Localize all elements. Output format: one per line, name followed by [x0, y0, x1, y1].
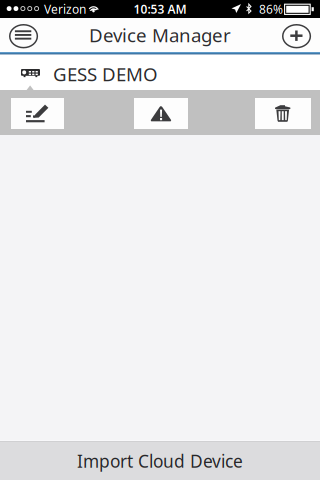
- staticText: Device Manager: [89, 23, 231, 47]
- button[interactable]: Menu: [0, 18, 46, 52]
- button[interactable]: GESS DEMO: [0, 55, 320, 90]
- staticText: Verizon: [44, 1, 86, 17]
- staticText: Import Cloud Device: [77, 449, 243, 472]
- staticText: GESS DEMO: [53, 62, 158, 86]
- staticText: 86%: [259, 1, 283, 17]
- button[interactable]: Alerts: [134, 98, 188, 129]
- button[interactable]: Import Cloud Device: [0, 440, 320, 480]
- button[interactable]: Edit: [11, 98, 64, 129]
- staticText: 10:53 AM: [133, 1, 186, 17]
- button[interactable]: Delete: [255, 98, 311, 129]
- button[interactable]: Add device: [0, 18, 320, 52]
